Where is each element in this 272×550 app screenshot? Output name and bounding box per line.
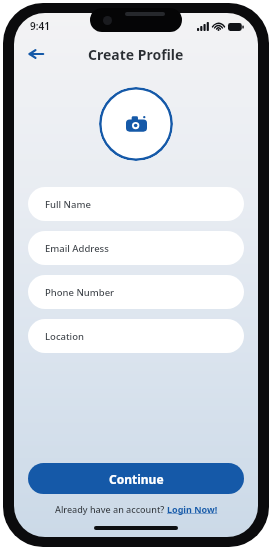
staticText: Continue (109, 471, 164, 487)
button[interactable]: Login Now! (167, 503, 218, 515)
button[interactable]: Continue (28, 463, 244, 494)
button[interactable]: Phone Number (28, 275, 244, 309)
button[interactable]: Email Address (28, 231, 244, 265)
button[interactable]: Back (22, 40, 50, 68)
staticText: Location (45, 330, 84, 343)
staticText: Phone Number (45, 286, 115, 299)
staticText: Create Profile (88, 45, 184, 64)
button[interactable]: Add profile photo (99, 87, 173, 161)
staticText: Already have an account? (55, 503, 167, 515)
staticText: Full Name (45, 198, 91, 211)
staticText: 9:41 (30, 19, 50, 33)
button[interactable]: Location (28, 319, 244, 353)
button[interactable]: Full Name (28, 187, 244, 221)
staticText: Email Address (45, 242, 109, 255)
staticText: Login Now! (167, 503, 218, 515)
